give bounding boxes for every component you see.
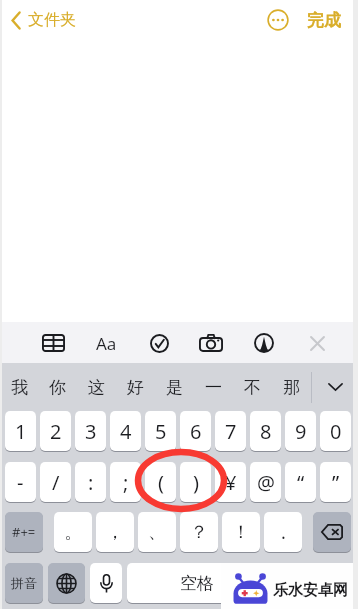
button[interactable]: 1 <box>5 411 36 451</box>
staticText: ？ <box>190 521 208 544</box>
button[interactable]: 拼音 <box>5 563 43 603</box>
staticText: ( <box>158 469 164 496</box>
button[interactable]: Camera <box>196 328 226 358</box>
staticText: 不 <box>244 377 261 398</box>
staticText: Aa <box>96 332 117 355</box>
button[interactable]: 8 <box>250 411 281 451</box>
button[interactable]: Dictation <box>90 563 122 603</box>
staticText: 那 <box>283 377 300 398</box>
staticText: 完成 <box>307 10 341 31</box>
staticText: 2 <box>50 418 62 445</box>
staticText: 换行 <box>297 574 325 592</box>
button[interactable]: ( <box>145 462 176 502</box>
button[interactable]: 6 <box>180 411 211 451</box>
button[interactable]: ; <box>110 462 141 502</box>
button[interactable]: 空格 <box>127 563 266 603</box>
staticText: 7 <box>225 418 237 445</box>
staticText: 3 <box>85 418 97 445</box>
button[interactable]: 。 <box>54 512 92 552</box>
staticText: 4 <box>120 418 132 445</box>
staticText: 5 <box>155 418 167 445</box>
button[interactable]: 9 <box>285 411 316 451</box>
button[interactable]: ！ <box>222 512 260 552</box>
staticText: 0 <box>330 418 342 445</box>
button[interactable]: 3 <box>75 411 106 451</box>
staticText: @ <box>257 469 275 496</box>
staticText: #+= <box>12 523 36 541</box>
staticText: 文件夹 <box>28 10 76 30</box>
staticText: 8 <box>260 418 272 445</box>
button[interactable]: / <box>40 462 71 502</box>
button[interactable]: 我 <box>0 363 38 411</box>
button[interactable]: 完成 <box>305 5 343 36</box>
button[interactable]: “ <box>285 462 316 502</box>
button[interactable]: 、 <box>138 512 176 552</box>
button[interactable]: . <box>264 512 302 552</box>
staticText: . <box>281 520 286 545</box>
button[interactable]: 4 <box>110 411 141 451</box>
button[interactable]: ？ <box>180 512 218 552</box>
staticText: 好 <box>127 377 144 398</box>
staticText: 6 <box>190 418 202 445</box>
button[interactable]: More options <box>267 9 289 31</box>
staticText: 我 <box>11 377 28 398</box>
button[interactable]: Close keyboard <box>302 328 332 358</box>
button[interactable]: Backspace <box>313 512 351 552</box>
button[interactable]: 0 <box>320 411 351 451</box>
staticText: 空格 <box>180 573 214 594</box>
button[interactable]: 好 <box>116 363 155 411</box>
button[interactable]: 换行 <box>270 563 351 603</box>
button[interactable]: 5 <box>145 411 176 451</box>
staticText: 这 <box>88 377 105 398</box>
button[interactable]: @ <box>250 462 281 502</box>
button[interactable]: Collapse candidates <box>312 363 358 411</box>
button[interactable]: Insert table <box>38 328 68 358</box>
staticText: ¥ <box>225 469 237 496</box>
staticText: ; <box>123 469 129 496</box>
button[interactable]: 你 <box>38 363 77 411</box>
button[interactable]: #+= <box>5 512 43 552</box>
button[interactable]: Text formatting <box>91 328 121 358</box>
button[interactable]: 文件夹 <box>7 5 80 35</box>
button[interactable]: ) <box>180 462 211 502</box>
staticText: ， <box>106 521 124 544</box>
button[interactable]: 7 <box>215 411 246 451</box>
staticText: ) <box>193 469 199 496</box>
staticText: 。 <box>64 521 82 544</box>
staticText: 1 <box>15 418 27 445</box>
button[interactable]: - <box>5 462 36 502</box>
button[interactable]: Checklist <box>144 328 174 358</box>
button[interactable]: ¥ <box>215 462 246 502</box>
staticText: ” <box>332 469 340 496</box>
staticText: - <box>17 469 24 496</box>
staticText: / <box>52 469 60 496</box>
button[interactable]: 2 <box>40 411 71 451</box>
staticText: 乐水安卓网 <box>273 581 348 600</box>
button[interactable]: Markup <box>249 328 279 358</box>
button[interactable]: 不 <box>233 363 272 411</box>
button[interactable]: 一 <box>194 363 233 411</box>
button[interactable]: ， <box>96 512 134 552</box>
staticText: 拼音 <box>11 575 37 591</box>
button[interactable]: 那 <box>272 363 311 411</box>
button[interactable]: 这 <box>77 363 116 411</box>
button[interactable]: 是 <box>155 363 194 411</box>
button[interactable]: : <box>75 462 106 502</box>
staticText: 9 <box>295 418 307 445</box>
button[interactable]: ” <box>320 462 351 502</box>
button[interactable]: Switch keyboard <box>48 563 85 603</box>
staticText: 你 <box>49 377 66 398</box>
staticText: ！ <box>232 521 250 544</box>
staticText: 一 <box>205 377 222 398</box>
staticText: 是 <box>166 377 183 398</box>
staticText: “ <box>297 469 305 496</box>
staticText: : <box>88 469 94 496</box>
staticText: 、 <box>148 521 166 544</box>
